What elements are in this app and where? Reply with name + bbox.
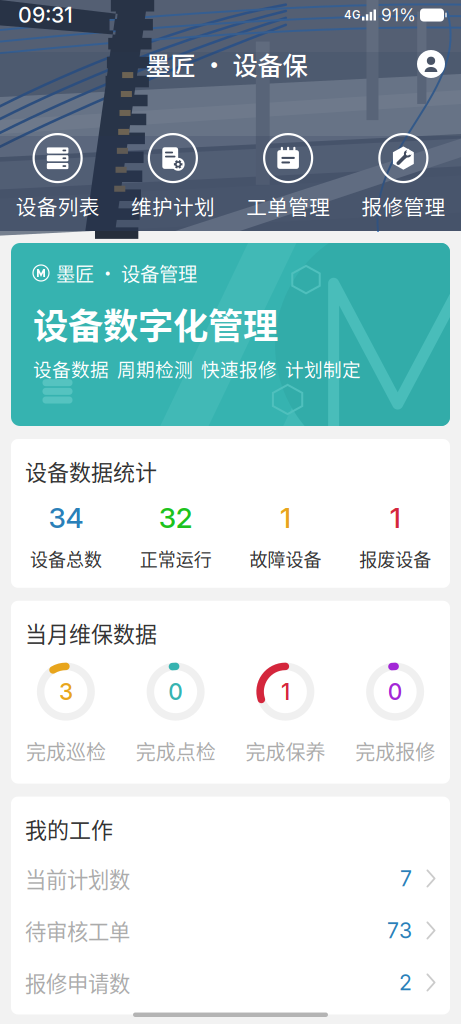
button[interactable]: 报修管理: [346, 134, 461, 221]
staticText: 故障设备: [249, 546, 321, 572]
button[interactable]: 待审核工单: [11, 904, 450, 956]
staticText: 完成巡检: [26, 737, 106, 766]
staticText: 当月维保数据: [25, 617, 157, 649]
staticText: 我的工作: [25, 813, 113, 844]
button[interactable]: 当前计划数: [11, 852, 450, 904]
staticText: 7: [400, 866, 412, 891]
staticText: 报废设备: [359, 546, 431, 572]
staticText: 73: [387, 918, 412, 943]
staticText: 完成报修: [355, 737, 435, 766]
staticText: 完成点检: [136, 737, 216, 766]
staticText: 工单管理: [246, 191, 330, 221]
staticText: 0: [388, 678, 403, 705]
staticText: 91%: [381, 4, 416, 25]
staticText: 墨匠 · 设备保: [145, 46, 307, 82]
staticText: 维护计划: [131, 191, 215, 221]
button[interactable]: 账户: [409, 42, 453, 86]
button[interactable]: 维护计划: [115, 134, 230, 221]
staticText: 1: [280, 501, 291, 535]
staticText: 09:31: [18, 2, 73, 28]
staticText: 2: [399, 970, 412, 995]
staticText: 设备总数: [30, 546, 102, 572]
button[interactable]: 设备列表: [0, 134, 115, 221]
staticText: 报修管理: [361, 191, 445, 221]
staticText: 设备数据统计: [25, 455, 157, 487]
staticText: 完成保养: [245, 737, 325, 766]
staticText: 4G: [344, 8, 360, 22]
staticText: 0: [168, 678, 183, 705]
staticText: 当前计划数: [25, 863, 130, 894]
button[interactable]: 报修申请数: [11, 956, 450, 1008]
staticText: 1: [281, 678, 290, 705]
staticText: 设备列表: [16, 191, 100, 221]
staticText: 3: [59, 678, 73, 705]
staticText: 墨匠 · 设备管理: [56, 259, 197, 287]
staticText: 1: [390, 501, 401, 535]
staticText: 设备数字化管理: [33, 298, 278, 349]
button[interactable]: 工单管理: [230, 134, 346, 221]
staticText: 待审核工单: [25, 915, 130, 946]
staticText: 报修申请数: [25, 967, 130, 998]
staticText: 32: [159, 501, 193, 535]
staticText: 设备数据 周期检测 快速报修 计划制定: [33, 355, 361, 382]
staticText: 34: [48, 501, 83, 535]
staticText: 正常运行: [140, 546, 212, 572]
